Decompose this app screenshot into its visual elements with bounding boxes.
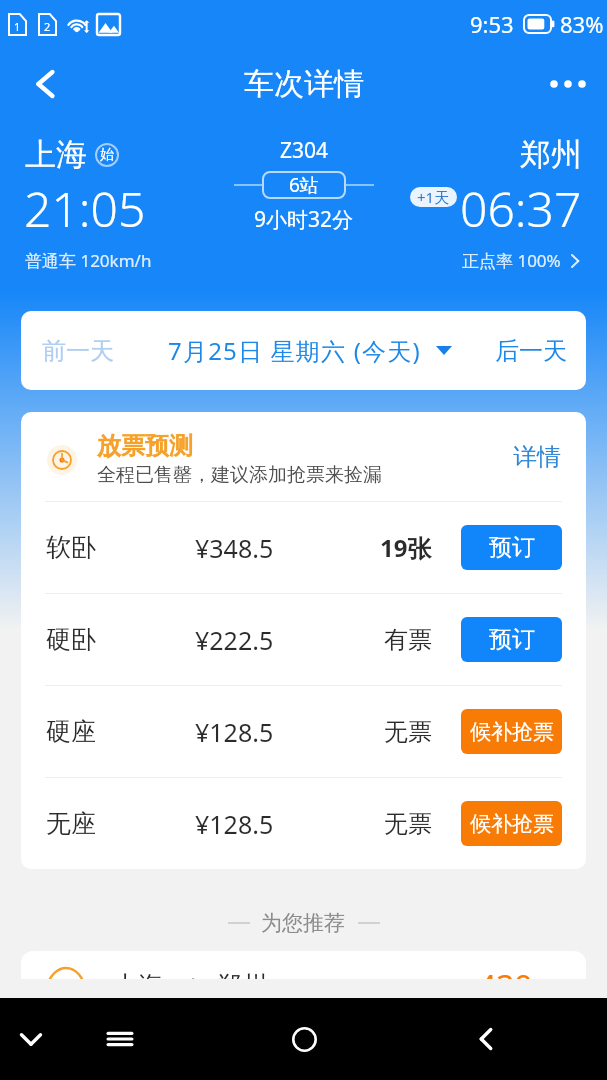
button[interactable]: Hide keyboard [6,1014,56,1064]
button[interactable]: More options [545,61,591,107]
staticText: 前一天 [42,336,114,366]
staticText: 软卧 [46,532,96,563]
staticText: +1天 [417,187,450,207]
button[interactable]: 硬座 [21,686,586,777]
staticText: 后一天 [495,336,567,366]
button[interactable]: 7月25日 星期六 (今天) [162,328,458,373]
staticText: ¥222.5 [195,623,274,657]
staticText: 始 [100,146,114,164]
staticText: 上海 [113,970,163,991]
staticText: 为您推荐 [261,910,345,936]
staticText: 普通车 120km/h [25,249,152,272]
staticText: 21:05 [24,176,146,241]
staticText: 6站 [289,172,319,198]
staticText: 郑州 [520,135,582,174]
button[interactable]: 后一天 [490,320,572,382]
button[interactable]: 无座 [21,778,586,869]
staticText: 19张 [380,531,432,564]
staticText: ¥128.5 [195,715,274,749]
staticText: 439 [478,965,533,991]
staticText: 郑州 [217,970,267,991]
staticText: 06:37 [460,176,582,241]
button[interactable]: 候补抢票 [461,709,562,754]
staticText: 83% [560,9,604,39]
staticText: Z304 [280,136,329,165]
staticText: 候补抢票 [470,811,554,837]
button[interactable]: Menu [95,1014,145,1064]
staticText: 有票 [384,625,432,655]
staticText: 9小时32分 [254,205,354,234]
button[interactable]: 详情 [505,434,569,480]
staticText: 无座 [46,808,96,839]
staticText: 车次详情 [244,65,364,103]
button[interactable]: Back [461,1014,511,1064]
staticText: 硬座 [46,716,96,747]
staticText: 7月25日 星期六 (今天) [168,334,421,367]
button[interactable]: 上海 [21,951,586,991]
staticText: 正点率 100% [462,249,561,272]
button[interactable]: Home [279,1014,329,1064]
staticText: 全程已售罄，建议添加抢票来捡漏 [97,463,382,487]
staticText: 预订 [489,625,535,654]
button[interactable]: 预订 [461,617,562,662]
staticText: 详情 [513,442,561,472]
staticText: 无票 [384,809,432,839]
staticText: 候补抢票 [470,719,554,745]
staticText: 放票预测 [97,431,193,461]
staticText: 9:53 [470,9,514,39]
button[interactable]: 候补抢票 [461,801,562,846]
button[interactable]: 前一天 [37,320,119,382]
button[interactable]: 软卧 [21,502,586,593]
button[interactable]: Back [20,61,66,107]
staticText: ¥128.5 [195,807,274,841]
staticText: ¥348.5 [195,531,274,565]
button[interactable]: 预订 [461,525,562,570]
staticText: 硬卧 [46,624,96,655]
staticText: 2 [44,19,51,34]
button[interactable]: 硬卧 [21,594,586,685]
staticText: 预订 [489,533,535,562]
staticText: 上海 [25,135,87,174]
staticText: 无票 [384,717,432,747]
staticText: 1 [14,19,21,34]
